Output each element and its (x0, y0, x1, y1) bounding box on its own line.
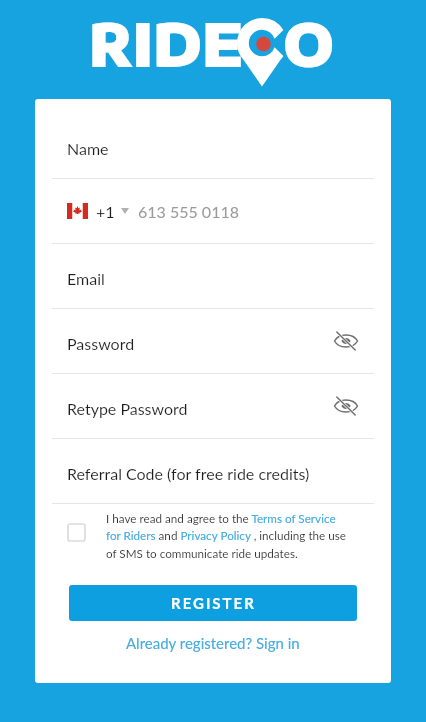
staticText: O (283, 7, 335, 79)
staticText: Retype Password (67, 399, 188, 418)
staticText: Name (67, 139, 109, 158)
button[interactable]: Already registered? Sign in (116, 629, 310, 657)
button[interactable]: Name (35, 114, 391, 178)
button[interactable]: Show password (330, 390, 362, 422)
button[interactable]: Show password (330, 325, 362, 357)
staticText: 613 555 0118 (138, 202, 239, 221)
button[interactable]: Password (35, 309, 391, 373)
staticText: Password (67, 334, 135, 353)
staticText: REGISTER (171, 594, 256, 612)
staticText: RIDE (89, 7, 244, 79)
staticText: Already registered? Sign in (126, 634, 300, 652)
staticText: Email (67, 269, 105, 288)
staticText: Referral Code (for free ride credits) (67, 464, 310, 483)
staticText: I have read and agree to the Terms of Se… (106, 511, 352, 561)
button[interactable]: Email (35, 244, 391, 308)
button[interactable]: Retype Password (35, 374, 391, 438)
button[interactable]: Referral Code (for free ride credits) (35, 439, 391, 503)
staticText: +1 (96, 202, 115, 221)
button[interactable]: +1 (35, 179, 391, 243)
button[interactable]: I have read and agree to the Terms of Se… (35, 511, 391, 561)
button[interactable]: REGISTER (69, 585, 357, 621)
